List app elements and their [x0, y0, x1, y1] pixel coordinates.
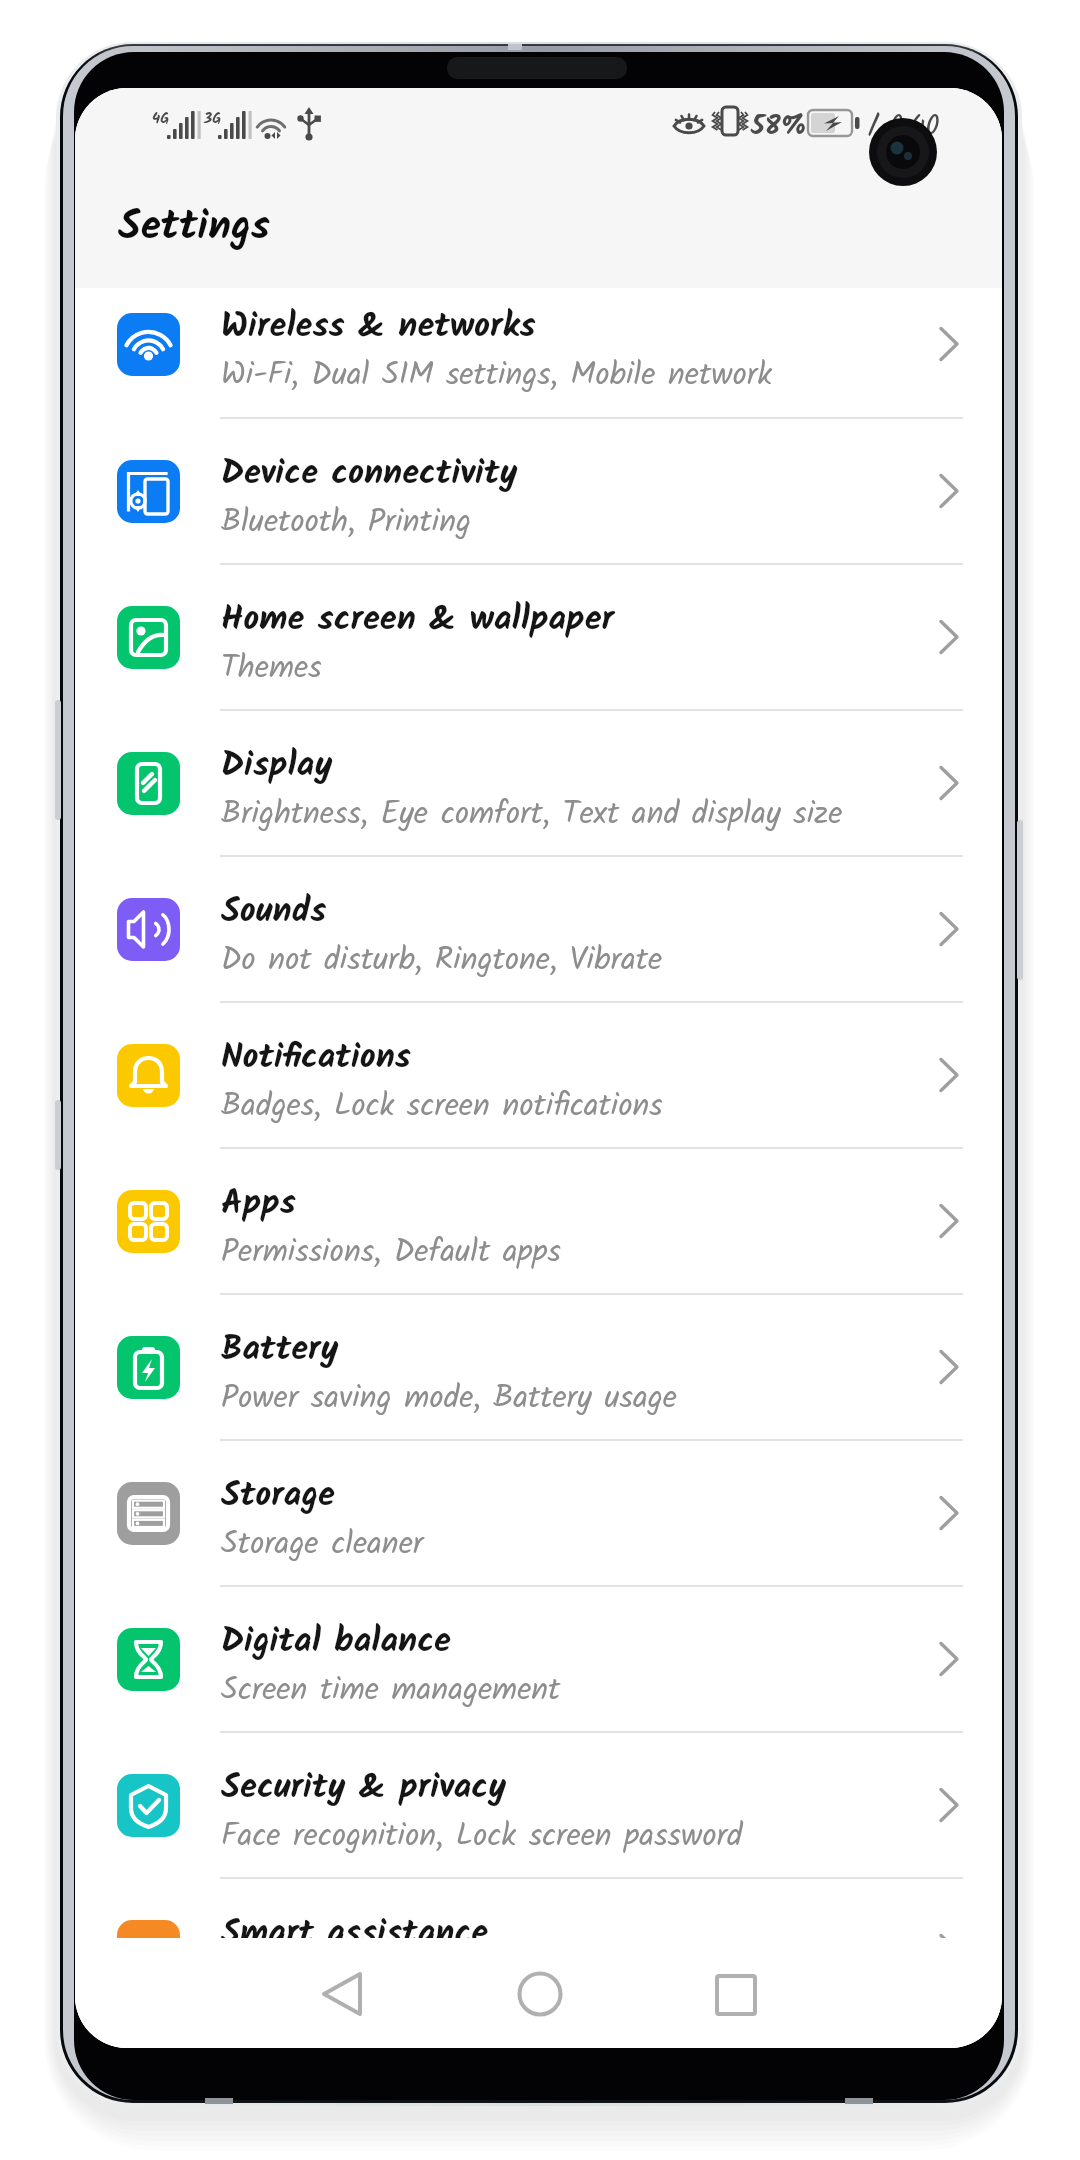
staticText: Wi-Fi, Dual SIM settings, Mobile network — [221, 351, 772, 401]
staticText: Smart assistance — [221, 1906, 489, 1961]
staticText: Storage — [221, 1468, 335, 1523]
staticText: Face recognition, Lock screen password — [221, 1812, 743, 1862]
staticText: Battery — [221, 1322, 339, 1377]
staticText: Badges, Lock screen notifications — [221, 1082, 663, 1132]
staticText: Digital balance — [221, 1614, 451, 1669]
button[interactable]: Sounds — [75, 857, 1002, 1001]
staticText: Sounds — [221, 884, 327, 939]
staticText: 58% — [751, 105, 808, 148]
staticText: / 0:40 — [868, 104, 940, 149]
staticText: Screen time management — [221, 1666, 561, 1716]
button[interactable]: Notifications — [75, 1003, 1002, 1147]
button[interactable]: Home screen & wallpaper — [75, 565, 1002, 709]
staticText: Themes — [221, 644, 322, 694]
button[interactable]: Battery — [75, 1295, 1002, 1439]
button[interactable]: Smart assistance — [75, 1879, 1002, 2023]
button[interactable]: Home — [485, 1938, 595, 2048]
staticText: Storage cleaner — [221, 1520, 424, 1570]
staticText: Bluetooth, Printing — [221, 498, 471, 548]
staticText: Brightness, Eye comfort, Text and displa… — [221, 790, 843, 840]
button[interactable]: Display — [75, 711, 1002, 855]
button[interactable]: Wireless & networks — [75, 271, 1002, 417]
staticText: Accessibility, Gestures — [221, 1958, 515, 2008]
button[interactable]: Back — [286, 1938, 396, 2048]
staticText: Do not disturb, Ringtone, Vibrate — [221, 936, 663, 986]
staticText: Settings — [118, 195, 270, 260]
button[interactable]: Recent apps — [681, 1938, 791, 2048]
staticText: 3G — [204, 107, 222, 131]
staticText: Apps — [221, 1176, 296, 1231]
button[interactable]: Apps — [75, 1149, 1002, 1293]
staticText: 4G — [152, 107, 170, 131]
staticText: Notifications — [221, 1030, 411, 1085]
staticText: Permissions, Default apps — [221, 1228, 562, 1278]
staticText: Device connectivity — [221, 446, 518, 501]
button[interactable]: Security & privacy — [75, 1733, 1002, 1877]
staticText: Home screen & wallpaper — [221, 592, 614, 647]
staticText: Wireless & networks — [221, 299, 536, 354]
staticText: Display — [221, 738, 333, 793]
staticText: Power saving mode, Battery usage — [221, 1374, 677, 1424]
button[interactable]: Digital balance — [75, 1587, 1002, 1731]
staticText: Security & privacy — [221, 1760, 507, 1815]
button[interactable]: Device connectivity — [75, 419, 1002, 563]
button[interactable]: Storage — [75, 1441, 1002, 1585]
